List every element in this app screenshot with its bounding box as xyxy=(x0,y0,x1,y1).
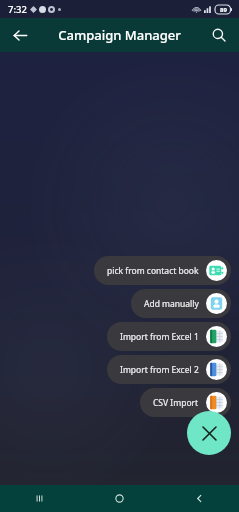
button[interactable]: Import from Excel 2 xyxy=(107,355,231,384)
button[interactable]: Back xyxy=(6,21,34,49)
button[interactable]: Recent apps xyxy=(0,485,79,512)
staticText: pick from contact book xyxy=(107,265,199,277)
button[interactable]: Back xyxy=(159,485,239,512)
staticText: Import from Excel 1 xyxy=(120,331,199,343)
button[interactable]: Add manually xyxy=(131,289,231,318)
button[interactable]: CSV Import xyxy=(140,388,231,417)
staticText: Campaign Manager xyxy=(58,26,181,44)
button[interactable]: Search xyxy=(205,21,233,49)
button[interactable]: pick from contact book xyxy=(94,256,231,285)
staticText: 7:32 xyxy=(8,3,27,16)
button[interactable]: Close menu xyxy=(187,411,231,455)
button[interactable]: Import from Excel 1 xyxy=(107,322,231,351)
staticText: Add manually xyxy=(144,298,199,310)
staticText: Import from Excel 2 xyxy=(120,364,199,376)
staticText: 89 xyxy=(220,6,227,14)
button[interactable]: Home xyxy=(79,485,159,512)
staticText: CSV Import xyxy=(153,397,199,409)
